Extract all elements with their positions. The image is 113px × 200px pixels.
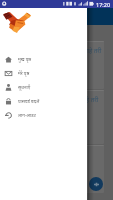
button[interactable]: सूचनाएँ (0, 80, 87, 94)
staticText: सूचना : विद्यालय प्रवेश प्रक्रिया सुरू आ… (5, 47, 102, 55)
button[interactable]: सूचना : शिष्यवृत्ती अर्ज भरणे सुरू आहे त… (3, 90, 104, 144)
staticText: सूचनाएँ (18, 84, 31, 90)
button[interactable]: मेरे पृष्ठ (0, 66, 87, 80)
staticText: मुख पृष्ठ (18, 56, 32, 62)
button[interactable]: मुख पृष्ठ (0, 52, 87, 66)
button[interactable] (3, 145, 104, 193)
staticText: पासवर्ड बदलें (18, 98, 40, 104)
staticText: लाग-आउट (18, 112, 36, 118)
staticText: सूचना : शिष्यवृत्ती अर्ज भरणे सुरू आहे त… (5, 96, 99, 104)
button[interactable]: सूचना : विद्यालय प्रवेश प्रक्रिया सुरू आ… (3, 41, 104, 89)
button[interactable]: पासवर्ड बदलें (0, 94, 87, 108)
staticText: मेरे पृष्ठ (18, 70, 30, 76)
button[interactable]: Add (89, 177, 103, 191)
button[interactable]: लाग-आउट (0, 108, 87, 122)
staticText: 17:20 (96, 1, 111, 8)
